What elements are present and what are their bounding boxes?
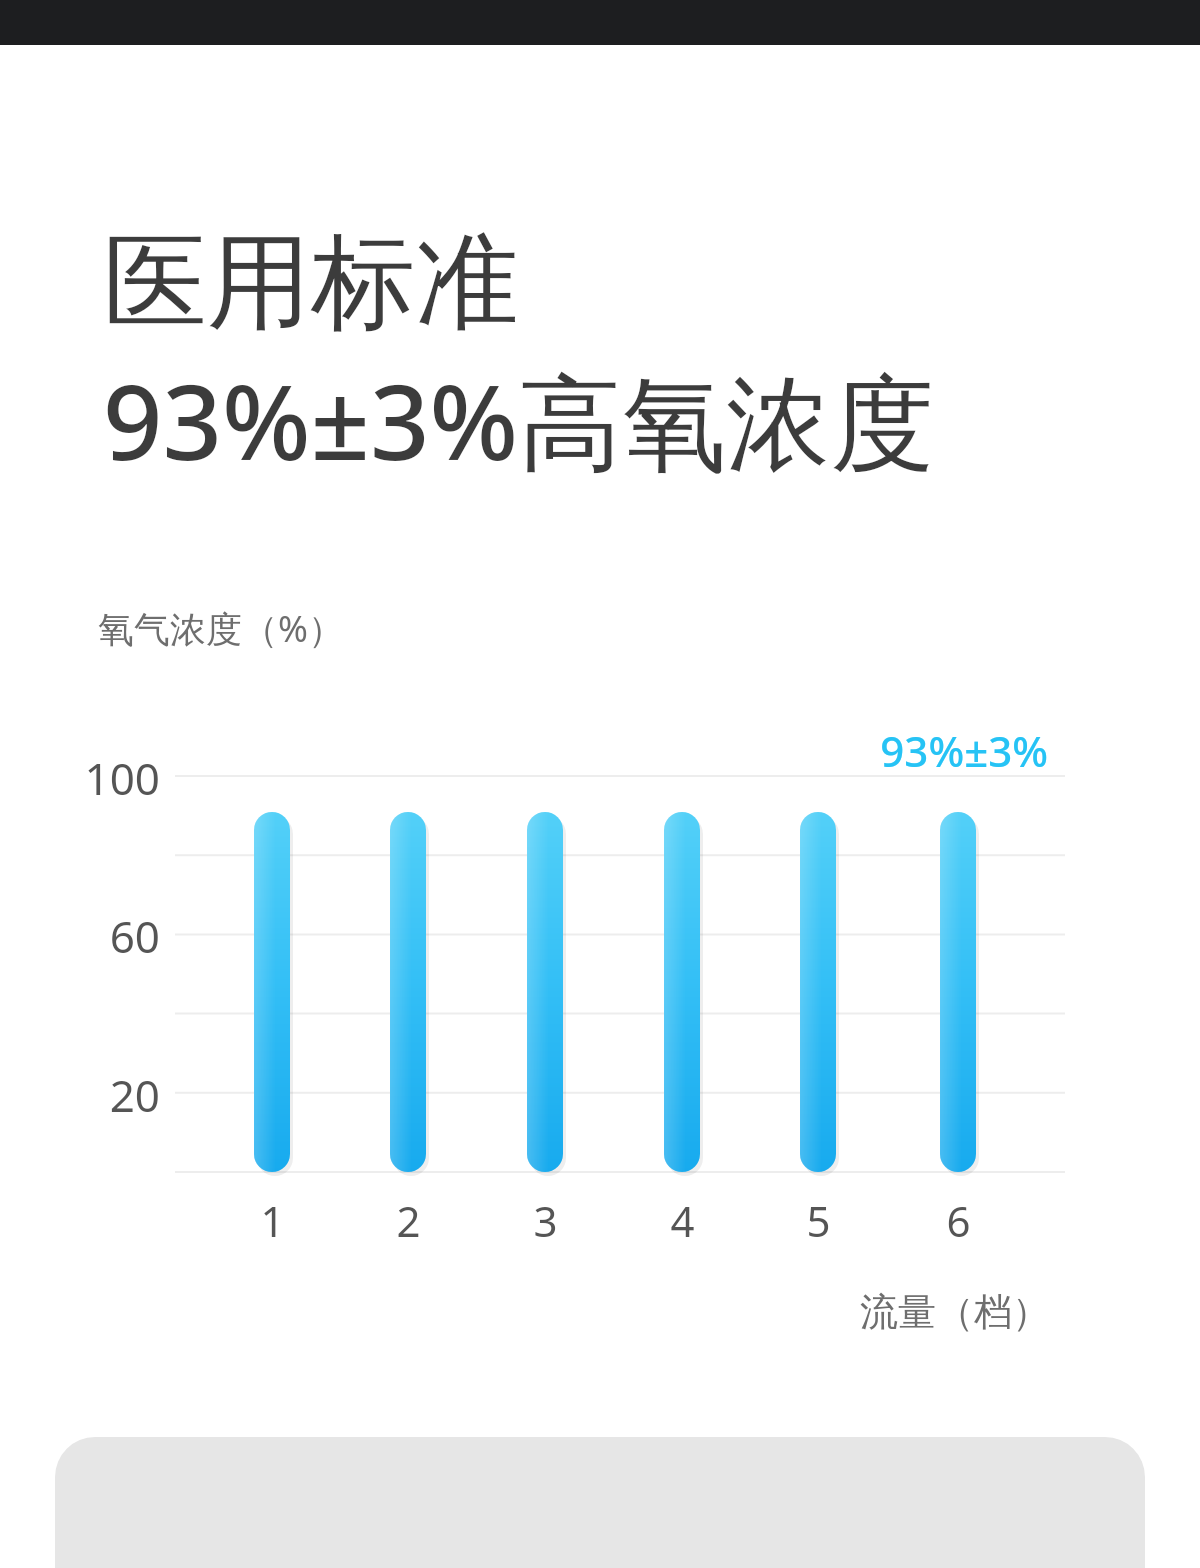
staticText: 93%±3% (880, 722, 1048, 779)
staticText: 1 (260, 1192, 285, 1249)
staticText: 4 (670, 1192, 695, 1249)
other: 氧气浓度柱状图 (0, 0, 1200, 1568)
staticText: 氧气浓度（%） (98, 604, 344, 653)
staticText: 5 (806, 1192, 831, 1249)
staticText: 3 (533, 1192, 558, 1249)
staticText: 2 (396, 1192, 421, 1249)
staticText: 100 (84, 748, 160, 808)
staticText: 流量（档） (860, 1288, 1050, 1336)
staticText: 60 (109, 906, 160, 966)
staticText: 6 (946, 1192, 971, 1249)
staticText: 医用标准 (103, 218, 519, 349)
staticText: 20 (109, 1065, 160, 1125)
staticText: 93%±3%高氧浓度 (103, 349, 935, 491)
